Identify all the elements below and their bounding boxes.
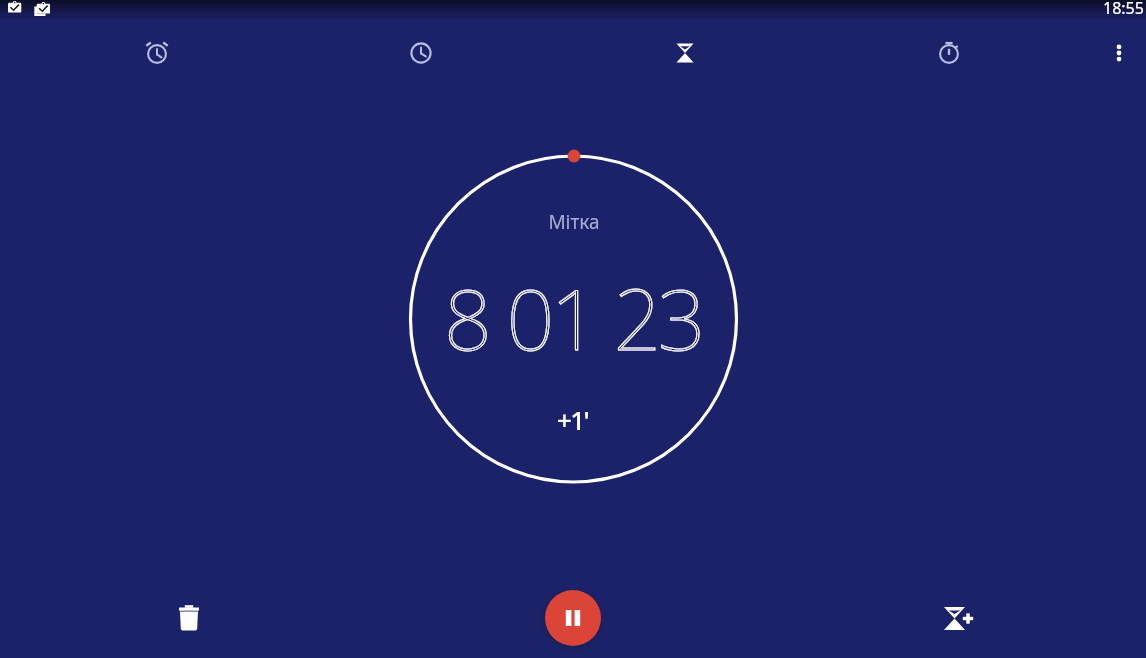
button[interactable]: Мітка xyxy=(470,209,677,235)
button[interactable]: Alarm xyxy=(133,29,181,77)
button[interactable]: +1' xyxy=(533,399,613,439)
button[interactable]: Clock xyxy=(397,29,445,77)
button[interactable]: Add timer xyxy=(933,594,981,642)
button[interactable]: Delete xyxy=(165,594,213,642)
staticText: +1' xyxy=(557,402,589,437)
staticText: 8 01 23 xyxy=(0,260,1146,374)
button[interactable]: Timer dial xyxy=(410,156,737,483)
staticText: 18:55 xyxy=(1103,0,1144,19)
button[interactable]: More options xyxy=(1101,35,1137,71)
button[interactable]: Pause xyxy=(545,590,601,646)
staticText: Мітка xyxy=(548,209,600,235)
button[interactable]: Timer xyxy=(661,29,709,77)
button[interactable]: Stopwatch xyxy=(925,29,973,77)
